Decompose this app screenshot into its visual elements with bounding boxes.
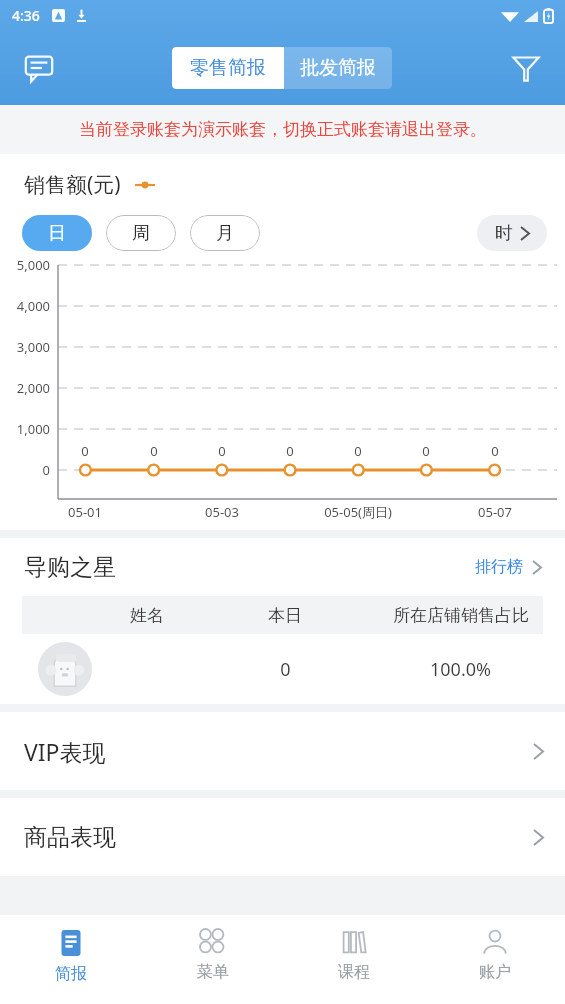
staticText: 0 xyxy=(150,442,158,460)
button[interactable]: 菜单 xyxy=(142,915,283,1004)
button[interactable]: Filter xyxy=(503,45,549,91)
staticText: 周 xyxy=(132,222,150,245)
staticText: 2,000 xyxy=(0,379,50,397)
staticText: 05-01 xyxy=(68,503,102,521)
staticText: 0 xyxy=(81,442,89,460)
staticText: 导购之星 xyxy=(24,553,116,582)
staticText: 排行榜 xyxy=(475,557,523,577)
button[interactable]: 简报 xyxy=(0,915,142,1004)
staticText: 05-03 xyxy=(205,503,239,521)
staticText: VIP表现 xyxy=(24,736,106,767)
staticText: 100.0% xyxy=(430,657,491,682)
staticText: 05-05(周日) xyxy=(324,503,392,521)
staticText: 0 xyxy=(491,442,499,460)
staticText: 当前登录账套为演示账套，切换正式账套请退出登录。 xyxy=(79,119,487,140)
staticText: 姓名 xyxy=(130,605,164,626)
staticText: 菜单 xyxy=(197,962,229,982)
button[interactable]: Messages xyxy=(16,45,62,91)
staticText: 日 xyxy=(48,222,66,245)
staticText: 本日 xyxy=(268,605,302,626)
button[interactable]: VIP表现 xyxy=(0,712,565,790)
staticText: 所在店铺销售占比 xyxy=(393,605,529,626)
staticText: 0 xyxy=(0,461,50,479)
button[interactable]: 月 xyxy=(190,215,260,251)
button[interactable]: 时 xyxy=(477,215,547,251)
staticText: 4:36 xyxy=(12,6,40,25)
button[interactable]: 零售简报 xyxy=(172,47,284,89)
staticText: 0 xyxy=(354,442,362,460)
staticText: 5,000 xyxy=(0,256,50,274)
button[interactable]: 排行榜 xyxy=(469,551,547,583)
staticText: 销售额(元) xyxy=(24,170,121,199)
button[interactable]: 日 xyxy=(22,215,92,251)
button[interactable]: 账户 xyxy=(424,915,565,1004)
staticText: 零售简报 xyxy=(190,56,266,80)
button[interactable]: 课程 xyxy=(283,915,424,1004)
staticText: 账户 xyxy=(479,962,511,982)
staticText: 课程 xyxy=(338,962,370,982)
button[interactable]: 周 xyxy=(106,215,176,251)
staticText: 1,000 xyxy=(0,420,50,438)
button[interactable]: 批发简报 xyxy=(284,47,392,89)
staticText: 商品表现 xyxy=(24,823,116,852)
staticText: 0 xyxy=(422,442,430,460)
staticText: 0 xyxy=(218,442,226,460)
staticText: 批发简报 xyxy=(300,56,376,80)
button[interactable]: 商品表现 xyxy=(0,798,565,876)
button[interactable]: 0 xyxy=(22,634,543,704)
staticText: 时 xyxy=(495,222,513,245)
staticText: 简报 xyxy=(55,964,87,984)
staticText: 0 xyxy=(280,657,291,682)
staticText: 0 xyxy=(286,442,294,460)
staticText: 3,000 xyxy=(0,338,50,356)
staticText: 4,000 xyxy=(0,297,50,315)
staticText: 月 xyxy=(216,222,234,245)
staticText: 05-07 xyxy=(478,503,512,521)
